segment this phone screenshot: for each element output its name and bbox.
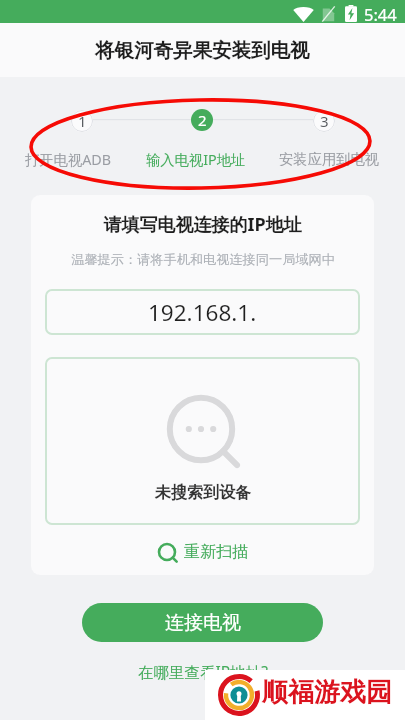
staticText: 请填写电视连接的IP地址 [103,212,302,237]
button[interactable]: 输入电视IP地址 [146,150,246,170]
staticText: 温馨提示：请将手机和电视连接同一局域网中 [71,251,335,268]
staticText: 未搜索到设备 [155,483,251,503]
button[interactable]: 在哪里查看IP地址? [132,659,274,684]
staticText: 5:44 [364,3,397,25]
staticText: 1 [78,111,87,131]
staticText: 192.168.1. [148,297,257,328]
staticText: 连接电视 [165,611,241,635]
button[interactable]: 2 [191,109,213,131]
staticText: 顺福游戏园 [262,676,392,709]
staticText: 2 [198,110,207,130]
button[interactable]: 安装应用到电视 [279,150,380,168]
button[interactable]: 重新扫描 [152,539,254,565]
button[interactable]: 连接电视 [82,603,323,642]
button[interactable]: 打开电视ADB [25,150,112,170]
staticText: 重新扫描 [184,542,248,562]
staticText: 3 [320,111,329,131]
button[interactable]: 1 [71,110,93,132]
staticText: 将银河奇异果安装到电视 [95,38,310,63]
button[interactable]: 3 [313,110,335,132]
